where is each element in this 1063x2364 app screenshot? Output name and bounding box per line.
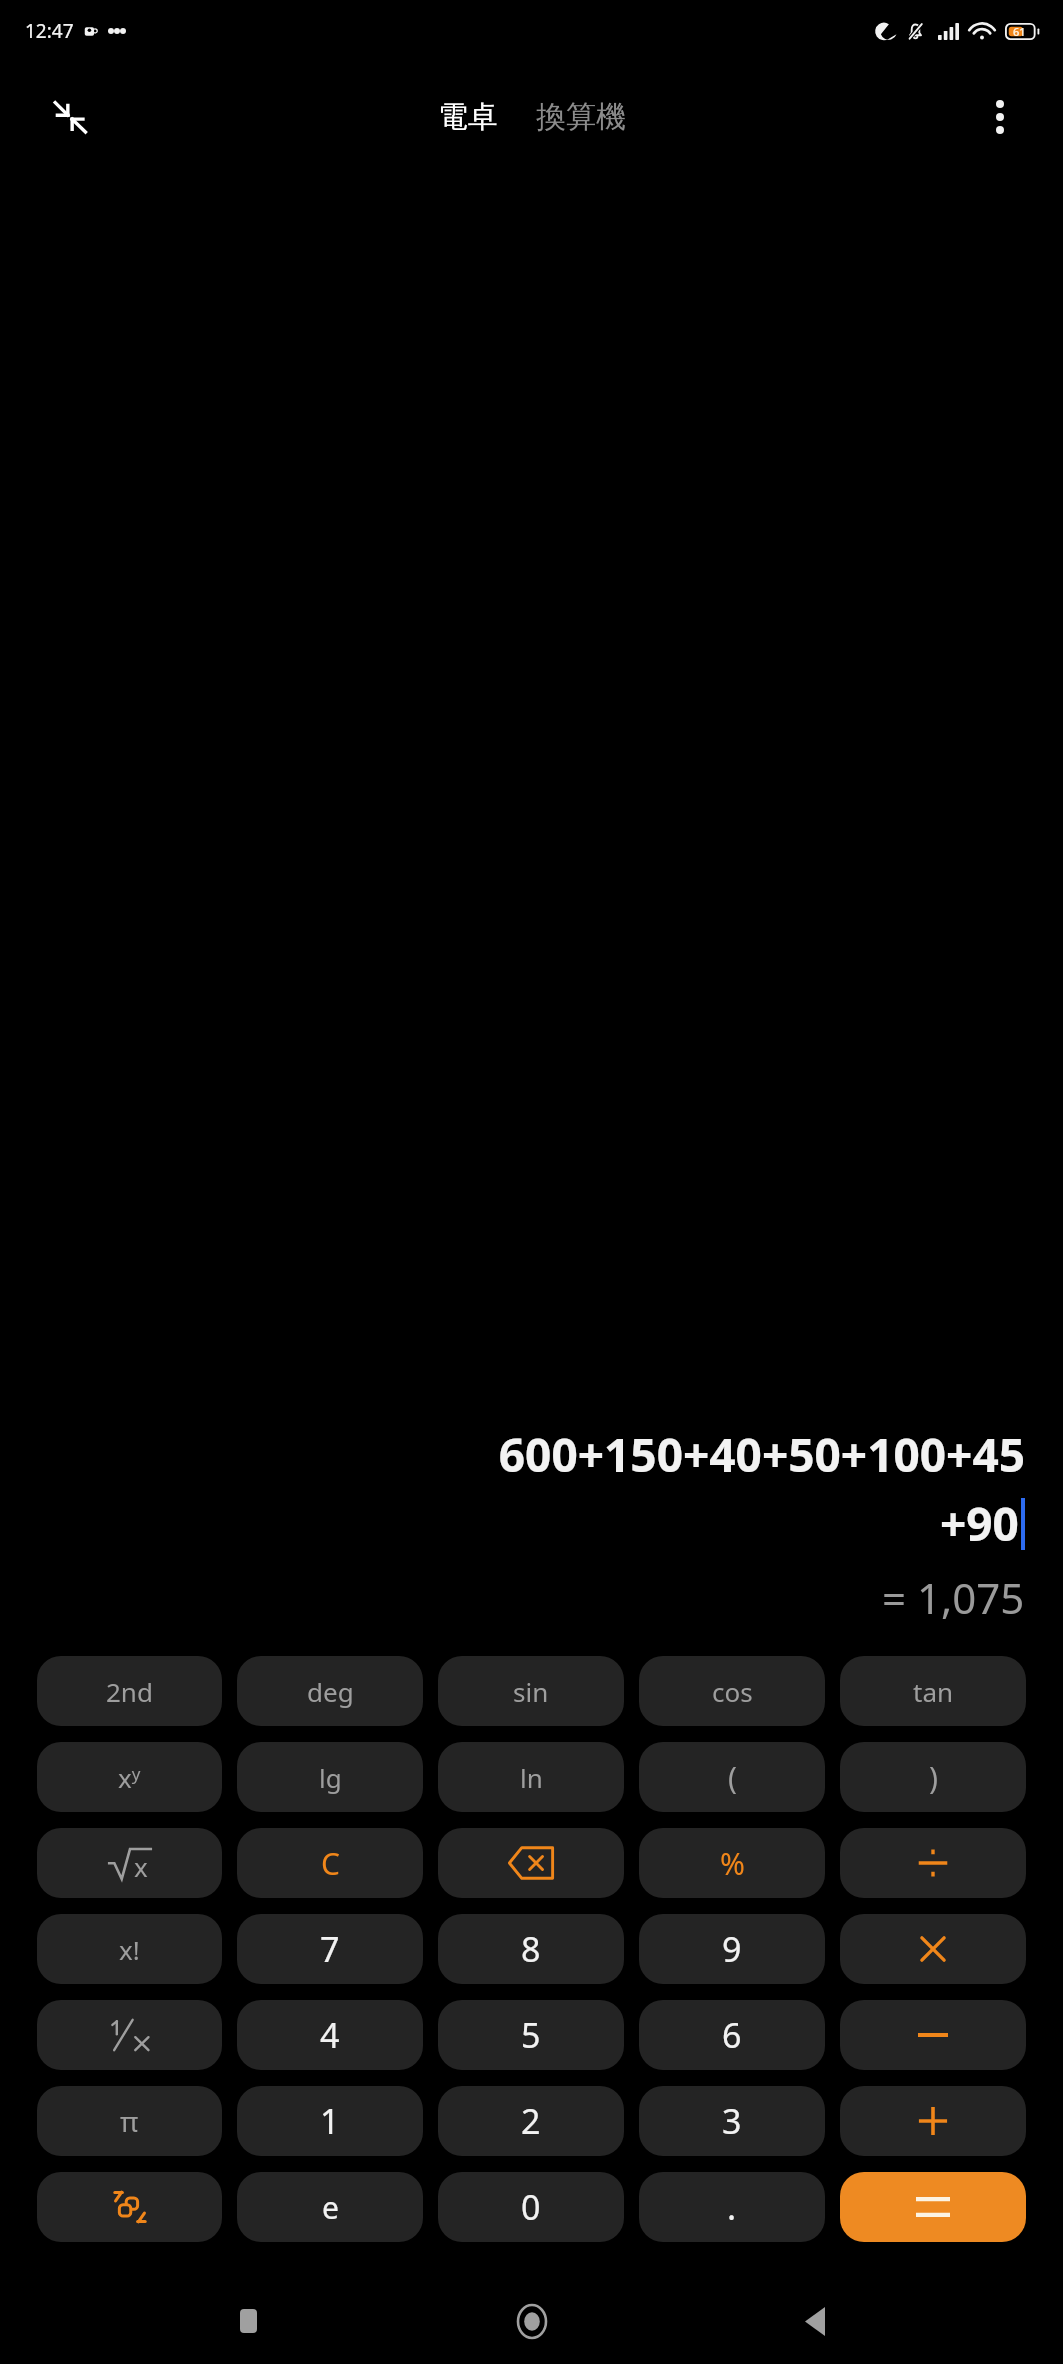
button[interactable]: 5 [438, 2000, 624, 2070]
staticText: 2 [521, 2098, 541, 2144]
button[interactable]: Home [497, 2286, 567, 2356]
button[interactable]: One over x [37, 2000, 222, 2070]
staticText: e [322, 2187, 339, 2228]
staticText: 1 [320, 2098, 340, 2144]
button[interactable]: ( [639, 1742, 825, 1812]
staticText: 5 [521, 2012, 541, 2058]
button[interactable]: Convert units [37, 2172, 222, 2242]
staticText: 600+150+40+50+100+45 [498, 1423, 1025, 1486]
staticText: 61 [1013, 24, 1026, 39]
button[interactable]: Plus [840, 2086, 1026, 2156]
staticText: 3 [722, 2098, 742, 2144]
staticText: 7 [320, 1926, 340, 1972]
button[interactable]: Back [780, 2286, 850, 2356]
button[interactable]: π [37, 2086, 222, 2156]
button[interactable]: 換算機 [528, 92, 634, 142]
button[interactable]: 電卓 [430, 92, 506, 142]
staticText: x! [119, 1932, 140, 1967]
staticText: 9 [722, 1926, 742, 1972]
staticText: 2nd [106, 1674, 153, 1709]
button[interactable]: Divide [840, 1828, 1026, 1898]
staticText: = 1,075 [882, 1569, 1025, 1626]
button[interactable]: xy [37, 1742, 222, 1812]
button[interactable]: % [639, 1828, 825, 1898]
staticText: ln [520, 1760, 543, 1795]
staticText: 電卓 [438, 98, 498, 136]
button[interactable]: C [237, 1828, 423, 1898]
button[interactable]: Equals [840, 2172, 1026, 2242]
staticText: 0 [521, 2184, 541, 2230]
staticText: cos [712, 1674, 753, 1709]
staticText: ( [728, 1757, 737, 1798]
button[interactable]: deg [237, 1656, 423, 1726]
staticText: 換算機 [536, 98, 626, 136]
button[interactable]: tan [840, 1656, 1026, 1726]
button[interactable]: Square root [37, 1828, 222, 1898]
button[interactable]: cos [639, 1656, 825, 1726]
button[interactable]: Multiply [840, 1914, 1026, 1984]
button[interactable]: lg [237, 1742, 423, 1812]
button[interactable]: Minus [840, 2000, 1026, 2070]
button[interactable]: 3 [639, 2086, 825, 2156]
button[interactable]: Collapse [42, 89, 98, 145]
button[interactable]: 2 [438, 2086, 624, 2156]
staticText: % [720, 1843, 745, 1884]
staticText: 6 [722, 2012, 742, 2058]
staticText: . [727, 2184, 737, 2230]
staticText: deg [307, 1674, 354, 1709]
staticText: 12:47 [25, 18, 74, 44]
staticText: 8 [521, 1926, 541, 1972]
button[interactable]: Backspace [438, 1828, 624, 1898]
staticText: x [134, 1849, 148, 1884]
staticText: tan [913, 1674, 954, 1709]
button[interactable]: 6 [639, 2000, 825, 2070]
staticText: C [321, 1843, 340, 1884]
staticText: +90 [940, 1492, 1019, 1555]
button[interactable]: e [237, 2172, 423, 2242]
button[interactable]: More options [973, 90, 1027, 144]
staticText: xy [118, 1760, 141, 1795]
staticText: sin [513, 1674, 549, 1709]
staticText: ) [929, 1757, 938, 1798]
staticText: 4 [320, 2012, 340, 2058]
button[interactable]: x! [37, 1914, 222, 1984]
button[interactable]: ln [438, 1742, 624, 1812]
button[interactable]: sin [438, 1656, 624, 1726]
button[interactable]: 1 [237, 2086, 423, 2156]
button[interactable]: 7 [237, 1914, 423, 1984]
button[interactable]: . [639, 2172, 825, 2242]
button[interactable]: ) [840, 1742, 1026, 1812]
staticText: lg [319, 1760, 342, 1795]
button[interactable]: 9 [639, 1914, 825, 1984]
button[interactable]: 2nd [37, 1656, 222, 1726]
button[interactable]: 4 [237, 2000, 423, 2070]
button[interactable]: 8 [438, 1914, 624, 1984]
button[interactable]: Recents [213, 2286, 283, 2356]
button[interactable]: 0 [438, 2172, 624, 2242]
staticText: π [120, 2102, 139, 2140]
